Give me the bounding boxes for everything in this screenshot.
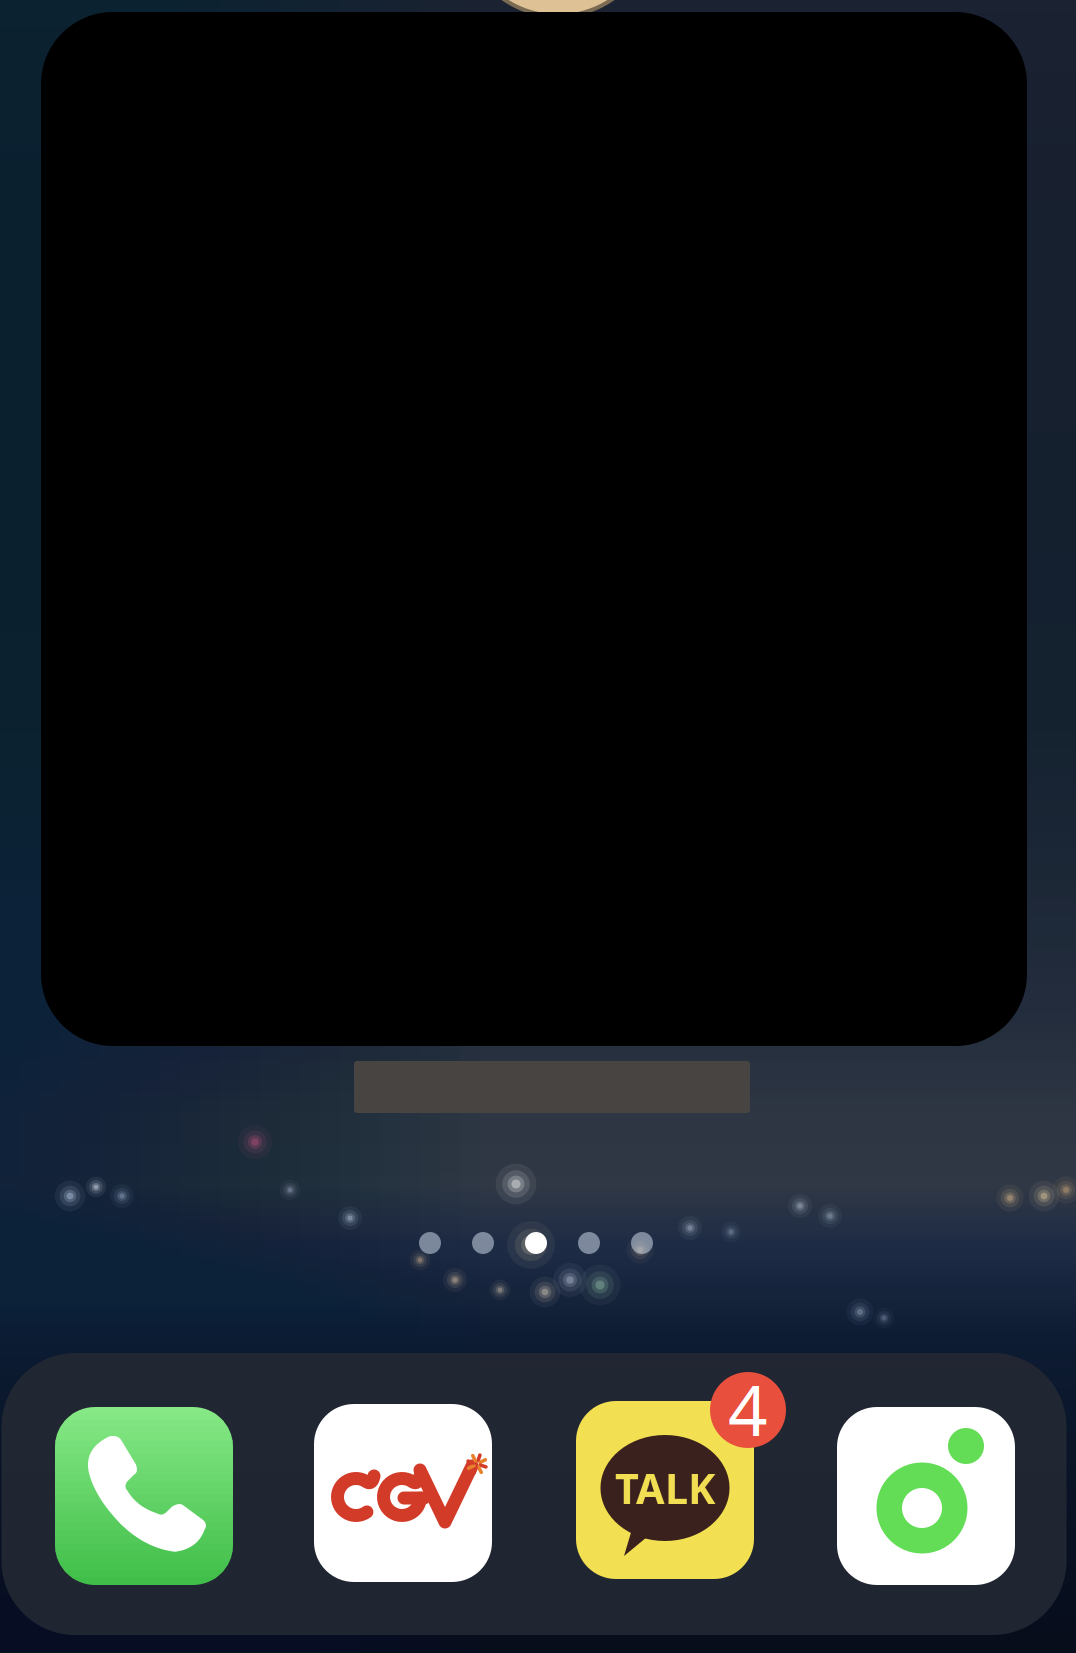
staticText: 4 [728, 1363, 768, 1455]
button[interactable]: App [837, 1407, 1015, 1585]
button[interactable]: Phone [55, 1407, 233, 1585]
button[interactable]: KakaoTalk, 4 unread [576, 1401, 754, 1579]
staticText: TALK [615, 1461, 715, 1515]
button[interactable]: CGV [314, 1404, 492, 1582]
